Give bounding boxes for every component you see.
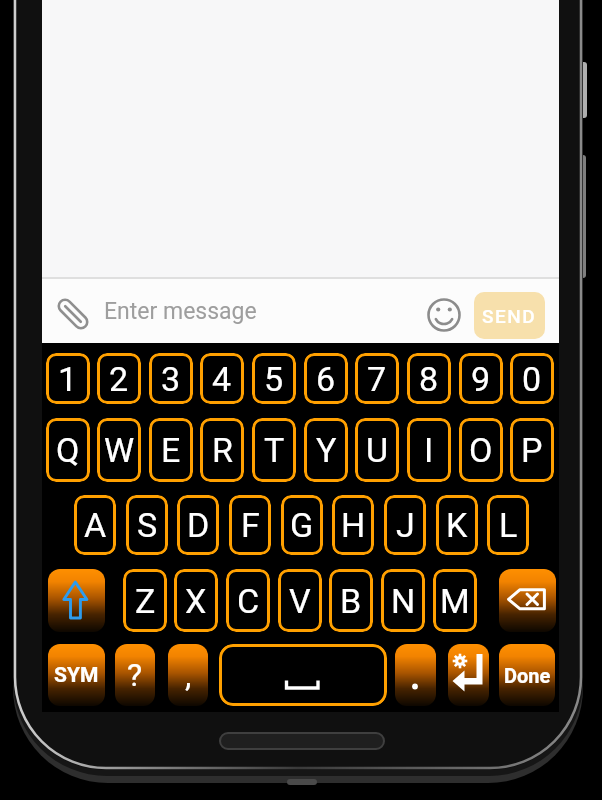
staticText: E [161, 430, 181, 470]
button[interactable]: Z [123, 569, 167, 632]
staticText: F [241, 505, 260, 545]
staticText: M [440, 581, 470, 621]
button[interactable]: Done [499, 644, 555, 706]
staticText: S [137, 505, 158, 545]
button[interactable]: F [229, 495, 271, 555]
button[interactable]: N [381, 569, 425, 632]
staticText: SEND [482, 305, 537, 327]
button[interactable]: A [74, 495, 116, 555]
button[interactable]: ? [115, 644, 155, 706]
button[interactable]: J [384, 495, 426, 555]
button[interactable]: 4 [200, 353, 244, 404]
staticText: 0 [522, 359, 542, 399]
staticText: ? [127, 656, 143, 694]
button[interactable]: P [510, 418, 554, 482]
button[interactable] [48, 569, 105, 632]
button[interactable]: C [226, 569, 270, 632]
button[interactable]: Y [304, 418, 348, 482]
staticText: I [424, 430, 434, 470]
button[interactable]: SYM [48, 644, 105, 706]
staticText: N [391, 581, 416, 621]
button[interactable] [499, 569, 556, 632]
staticText: C [237, 581, 260, 621]
staticText: H [341, 505, 366, 545]
button[interactable]: T [252, 418, 296, 482]
staticText: A [84, 505, 107, 545]
button[interactable]: L [487, 495, 529, 555]
staticText: Y [316, 430, 337, 470]
staticText: V [289, 581, 311, 621]
staticText: Enter message [104, 298, 257, 325]
button[interactable]: W [97, 418, 141, 482]
staticText: K [446, 505, 468, 545]
button[interactable]: X [174, 569, 218, 632]
staticText: SYM [54, 663, 99, 688]
staticText: 5 [264, 359, 284, 399]
button[interactable]: Q [46, 418, 90, 482]
button[interactable]: H [332, 495, 374, 555]
button[interactable]: SEND [474, 292, 545, 339]
staticText: 1 [58, 359, 78, 399]
button[interactable]: 6 [304, 353, 348, 404]
button[interactable] [395, 644, 436, 706]
button[interactable]: 7 [355, 353, 399, 404]
button[interactable]: 8 [407, 353, 451, 404]
staticText: T [264, 430, 285, 470]
button[interactable]: , [168, 644, 208, 706]
staticText: 2 [109, 359, 129, 399]
staticText: 3 [161, 359, 181, 399]
button[interactable]: 9 [459, 353, 503, 404]
staticText: Q [56, 430, 80, 470]
button[interactable]: V [278, 569, 322, 632]
staticText: O [469, 430, 493, 470]
staticText: Z [135, 581, 156, 621]
button[interactable]: K [436, 495, 478, 555]
staticText: 7 [367, 359, 387, 399]
button[interactable]: B [329, 569, 373, 632]
staticText: B [340, 581, 362, 621]
staticText: , [185, 656, 192, 694]
staticText: D [187, 505, 210, 545]
button[interactable]: M [433, 569, 477, 632]
button[interactable]: 1 [46, 353, 90, 404]
button[interactable]: G [281, 495, 323, 555]
staticText: J [396, 505, 415, 545]
button[interactable]: O [459, 418, 503, 482]
button[interactable]: 2 [97, 353, 141, 404]
staticText: 9 [471, 359, 491, 399]
staticText: Done [504, 664, 551, 687]
button[interactable]: 3 [149, 353, 193, 404]
button[interactable]: I [407, 418, 451, 482]
staticText: L [499, 505, 518, 545]
button[interactable]: R [200, 418, 244, 482]
button[interactable]: D [177, 495, 219, 555]
button[interactable]: S [126, 495, 168, 555]
staticText: W [104, 430, 135, 470]
staticText: G [290, 505, 314, 545]
staticText: P [521, 430, 543, 470]
staticText: 6 [316, 359, 336, 399]
button[interactable]: 5 [252, 353, 296, 404]
button[interactable]: U [355, 418, 399, 482]
button[interactable] [219, 644, 387, 706]
staticText: R [212, 430, 233, 470]
staticText: U [366, 430, 389, 470]
button[interactable]: 0 [510, 353, 554, 404]
button[interactable] [448, 644, 489, 706]
button[interactable]: E [149, 418, 193, 482]
staticText: 4 [212, 359, 232, 399]
staticText: 8 [419, 359, 439, 399]
staticText: X [185, 581, 207, 621]
